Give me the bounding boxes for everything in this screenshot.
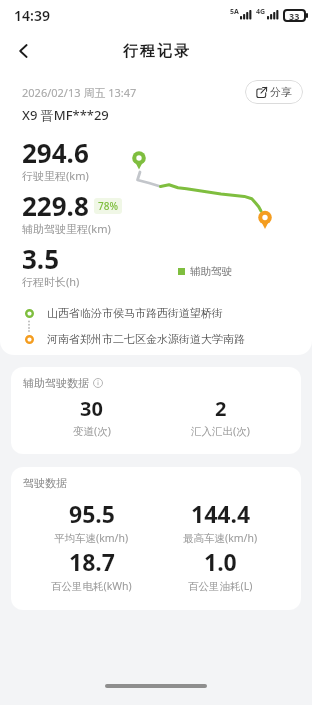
staticText: 2 [215, 395, 227, 422]
staticText: 辅助驾驶数据 [23, 376, 89, 390]
staticText: 汇入汇出(次) [191, 424, 250, 438]
staticText: 5A [230, 7, 239, 17]
button[interactable]: 分享 [245, 80, 303, 104]
staticText: 294.6 [22, 135, 89, 170]
staticText: 95.5 [69, 498, 115, 529]
staticText: 辅助驾驶里程(km) [22, 221, 111, 236]
staticText: 百公里油耗(L) [188, 579, 253, 593]
staticText: 行程记录 [122, 42, 190, 61]
staticText: 辅助驾驶 [190, 265, 232, 278]
staticText: 229.8 [22, 188, 89, 223]
staticText: 行驶里程(km) [22, 168, 89, 183]
staticText: 18.7 [69, 546, 115, 577]
button[interactable]: 驾驶数据 [11, 467, 301, 610]
staticText: X9 晋MF***29 [22, 106, 109, 124]
staticText: 平均车速(km/h) [54, 531, 129, 545]
button[interactable]: 辅助驾驶数据 [11, 367, 301, 454]
staticText: 最高车速(km/h) [183, 531, 258, 545]
staticText: 行程时长(h) [22, 274, 80, 289]
staticText: 144.4 [191, 498, 251, 529]
staticText: 驾驶数据 [23, 476, 67, 490]
staticText: 2026/02/13 周五 13:47 [22, 85, 137, 100]
staticText: 3.5 [22, 241, 60, 276]
staticText: 14:39 [14, 6, 50, 25]
staticText: 山西省临汾市侯马市路西街道望桥街 [47, 306, 223, 320]
staticText: 河南省郑州市二七区金水源街道大学南路 [47, 332, 245, 346]
staticText: 33 [289, 10, 300, 22]
staticText: 30 [80, 395, 103, 422]
staticText: 分享 [270, 85, 292, 99]
staticText: 1.0 [204, 546, 237, 577]
staticText: 4G [256, 7, 266, 17]
button[interactable] [18, 45, 30, 57]
staticText: 百公里电耗(kWh) [51, 579, 132, 593]
staticText: 78% [98, 199, 118, 213]
staticText: 变道(次) [73, 424, 111, 438]
